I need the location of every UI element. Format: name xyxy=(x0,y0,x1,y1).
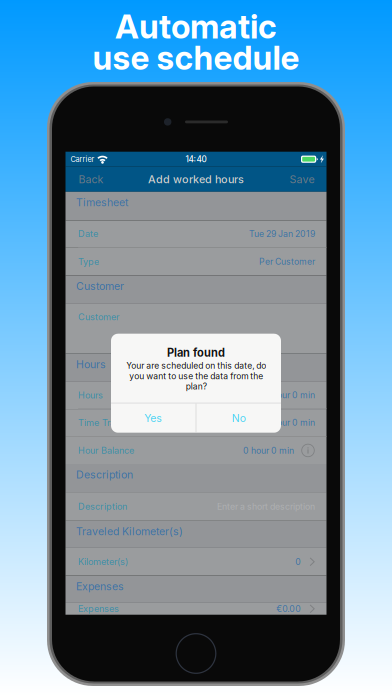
staticText: 0 hour 0 min xyxy=(243,445,294,456)
staticText: 14:40 xyxy=(185,154,206,164)
staticText: 0 hour 0 min xyxy=(264,390,315,400)
staticText: Plan found xyxy=(167,346,225,359)
staticText: Hours xyxy=(76,358,106,371)
staticText: Description xyxy=(76,468,133,481)
staticText: €0.00 xyxy=(276,603,301,614)
staticText: Carrier xyxy=(70,155,94,164)
staticText: Type xyxy=(78,256,99,267)
staticText: No xyxy=(232,412,246,424)
button[interactable]: Save xyxy=(277,167,326,192)
button[interactable]: Back xyxy=(65,167,115,192)
staticText: Automatic xyxy=(115,7,277,46)
button[interactable]: No xyxy=(196,403,281,433)
button[interactable]: Type xyxy=(65,248,326,275)
staticText: Tue 29 Jan 2019 xyxy=(249,228,315,239)
button[interactable]: Yes xyxy=(111,403,196,433)
staticText: Date xyxy=(78,228,98,239)
button[interactable]: Time Traveled xyxy=(65,409,326,437)
staticText: Your are scheduled on this date, do you … xyxy=(126,361,266,392)
staticText: Enter a short description xyxy=(217,501,315,512)
staticText: Time Traveled xyxy=(78,417,138,428)
staticText: Customer xyxy=(78,311,119,322)
staticText: Save xyxy=(289,173,314,186)
staticText: 0 xyxy=(295,556,301,567)
button[interactable]: Expenses xyxy=(65,603,326,615)
staticText: Hours xyxy=(78,390,103,401)
staticText: Customer xyxy=(76,280,124,292)
staticText: Description xyxy=(78,501,127,512)
staticText: use schedule xyxy=(92,38,299,78)
button[interactable]: Customer xyxy=(65,304,326,354)
staticText: Traveled Kilometer(s) xyxy=(76,525,183,538)
staticText: Expenses xyxy=(78,603,119,614)
staticText: Add worked hours xyxy=(148,173,244,186)
staticText: Per Customer xyxy=(259,256,315,267)
staticText: Yes xyxy=(144,412,162,424)
staticText: 0 hour 0 min xyxy=(264,417,315,428)
button[interactable]: Hours xyxy=(65,382,326,409)
staticText: Expenses xyxy=(76,580,124,593)
button[interactable]: Kilometer(s) xyxy=(65,548,326,576)
staticText: Timesheet xyxy=(76,196,128,209)
staticText: Kilometer(s) xyxy=(78,556,128,567)
staticText: Back xyxy=(78,173,103,186)
staticText: Hour Balance xyxy=(78,445,134,456)
button[interactable]: Date xyxy=(65,220,326,248)
button[interactable]: Hour Balance xyxy=(65,437,326,464)
button[interactable]: Description xyxy=(65,492,326,521)
